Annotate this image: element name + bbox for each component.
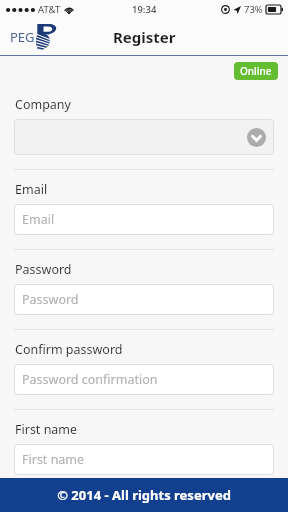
staticText: 19:34: [132, 3, 157, 16]
staticText: Password confirmation: [22, 371, 158, 388]
button[interactable]: Email: [14, 204, 274, 235]
button[interactable]: Password: [14, 284, 274, 315]
staticText: First name: [15, 421, 78, 438]
staticText: AT&T: [38, 3, 61, 16]
staticText: First name: [22, 451, 85, 468]
button[interactable]: First name: [14, 444, 274, 475]
button[interactable]: Select company: [14, 119, 274, 155]
staticText: 73%: [244, 3, 263, 16]
staticText: PEG: [10, 28, 35, 46]
staticText: © 2014 - All rights reserved: [57, 486, 231, 504]
staticText: Online: [240, 64, 272, 78]
button[interactable]: Password confirmation: [14, 364, 274, 395]
staticText: Confirm password: [15, 341, 123, 358]
staticText: Email: [22, 211, 55, 228]
staticText: Company: [15, 96, 71, 113]
staticText: Register: [113, 27, 176, 47]
button[interactable]: PEG home: [8, 22, 60, 52]
button[interactable]: © 2014 - All rights reserved: [0, 478, 288, 512]
button[interactable]: Online: [234, 62, 278, 80]
staticText: Email: [15, 181, 48, 198]
staticText: Password: [22, 291, 79, 308]
staticText: Password: [15, 261, 72, 278]
